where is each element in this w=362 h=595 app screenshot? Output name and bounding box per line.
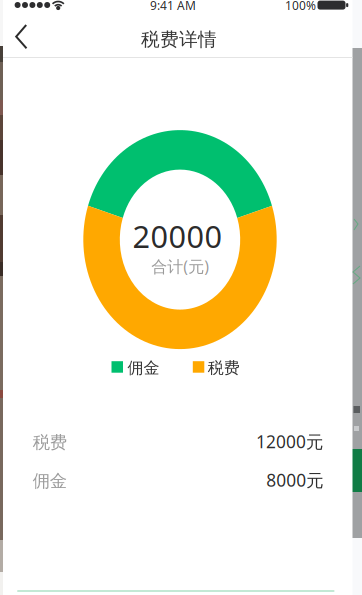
staticText: 100% bbox=[285, 0, 316, 13]
staticText: 12000元 bbox=[256, 430, 323, 453]
staticText: 税费详情 bbox=[141, 28, 217, 51]
staticText: 合计(元) bbox=[151, 256, 209, 277]
staticText: 20000 bbox=[132, 216, 222, 256]
staticText: 9:41 AM bbox=[150, 0, 196, 13]
staticText: 佣金 bbox=[127, 358, 159, 378]
staticText: 税费 bbox=[33, 432, 67, 453]
staticText: 税费 bbox=[208, 358, 240, 378]
staticText: 8000元 bbox=[266, 468, 323, 491]
staticText: 佣金 bbox=[33, 470, 67, 492]
button[interactable]: Back bbox=[3, 19, 39, 55]
